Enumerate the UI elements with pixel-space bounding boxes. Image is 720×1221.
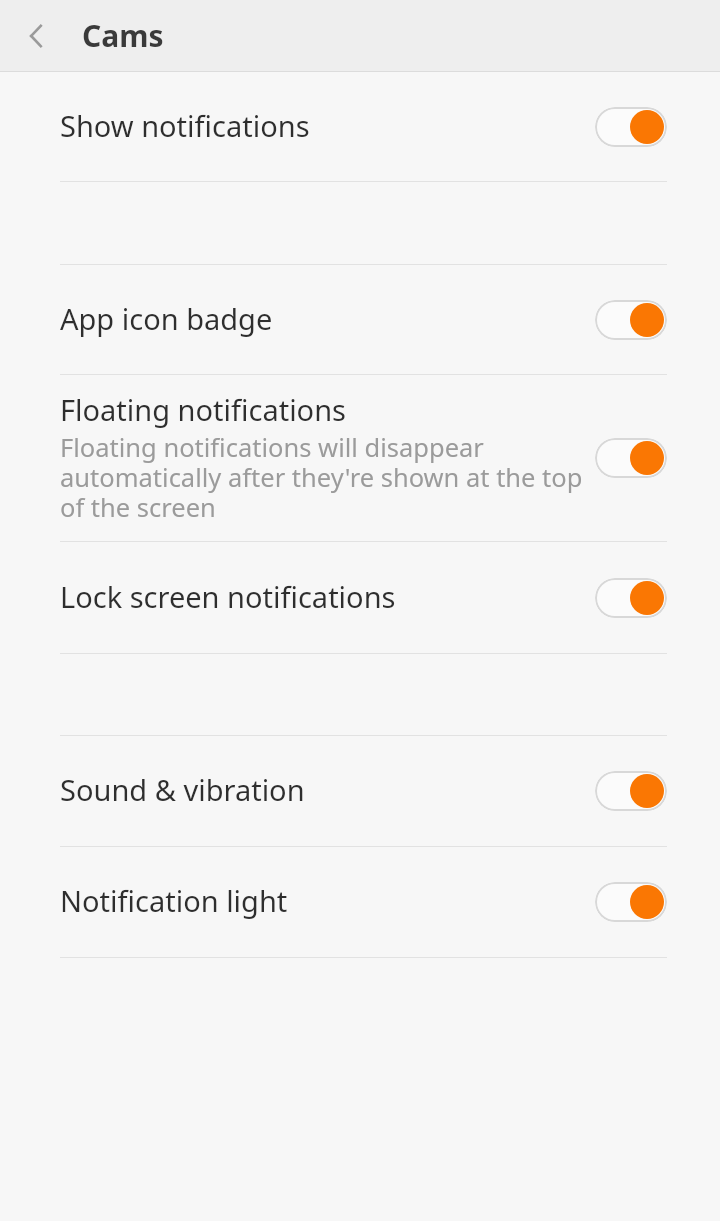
button[interactable]: Floating notifications: [0, 375, 720, 541]
staticText: Floating notifications will disappear au…: [60, 433, 583, 523]
staticText: Notification light: [60, 884, 288, 920]
other: On: [595, 771, 667, 811]
other: On: [595, 438, 667, 478]
staticText: Show notifications: [60, 109, 310, 145]
staticText: Floating notifications: [60, 393, 346, 429]
other: On: [595, 107, 667, 147]
staticText: App icon badge: [60, 302, 273, 338]
button[interactable]: Sound & vibration: [0, 736, 720, 846]
button[interactable]: Back: [0, 0, 72, 72]
button[interactable]: Show notifications: [0, 72, 720, 181]
other: On: [595, 882, 667, 922]
button[interactable]: App icon badge: [0, 265, 720, 374]
staticText: Sound & vibration: [60, 773, 305, 809]
button[interactable]: Lock screen notifications: [0, 542, 720, 653]
button[interactable]: Notification light: [0, 847, 720, 957]
other: On: [595, 300, 667, 340]
staticText: Cams: [82, 15, 164, 56]
staticText: Lock screen notifications: [60, 580, 396, 616]
other: On: [595, 578, 667, 618]
